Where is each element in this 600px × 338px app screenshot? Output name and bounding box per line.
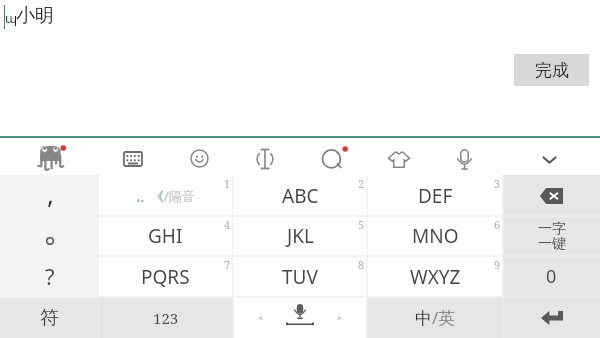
staticText: 完成 xyxy=(535,60,569,81)
button[interactable]: Question mark key xyxy=(0,256,98,297)
staticText: ABC xyxy=(282,183,319,209)
button[interactable]: Numbers xyxy=(98,297,233,338)
button[interactable]: Keyboard layout xyxy=(107,138,159,175)
button[interactable]: Theme xyxy=(373,138,425,175)
staticText: , xyxy=(47,176,54,211)
button[interactable]: JKL key xyxy=(233,216,367,256)
staticText: 2 xyxy=(358,176,365,191)
button[interactable]: Backspace xyxy=(503,175,600,216)
staticText: JKL xyxy=(287,223,314,249)
button[interactable]: Hide keyboard xyxy=(523,138,575,175)
button[interactable]: 完成 xyxy=(514,54,589,86)
button[interactable]: GHI key xyxy=(98,216,233,256)
button[interactable]: Chinese English toggle xyxy=(367,297,503,338)
button[interactable]: PQRS key xyxy=(98,256,233,297)
button[interactable]: Sogou input xyxy=(24,138,76,175)
staticText: 4 xyxy=(224,217,231,232)
staticText: 6 xyxy=(494,217,501,232)
staticText: ? xyxy=(45,261,55,291)
button[interactable]: MNO key xyxy=(367,216,503,256)
staticText: WXYZ xyxy=(410,264,461,290)
button[interactable]: DEF key xyxy=(367,175,503,216)
button[interactable]: Space, voice input xyxy=(233,297,367,338)
button[interactable]: Emoji xyxy=(173,138,225,175)
staticText: ,。《/隔音 xyxy=(137,187,195,205)
staticText: 符 xyxy=(40,306,59,330)
button[interactable]: WXYZ key xyxy=(367,256,503,297)
button[interactable]: Voice input xyxy=(438,138,490,175)
staticText: MNO xyxy=(412,223,459,249)
staticText: 3 xyxy=(494,176,501,191)
staticText: 8 xyxy=(358,257,365,272)
button[interactable]: Punctuation key xyxy=(98,175,233,216)
staticText: TUV xyxy=(282,264,318,290)
staticText: 9 xyxy=(494,257,501,272)
staticText: DEF xyxy=(418,183,453,209)
button[interactable]: Zero key xyxy=(503,256,600,297)
staticText: GHI xyxy=(148,223,183,249)
staticText: 0 xyxy=(546,264,557,289)
button[interactable]: TUV key xyxy=(233,256,367,297)
button[interactable]: Search xyxy=(305,138,357,175)
staticText: 中/英 xyxy=(415,306,456,329)
button[interactable]: Enter xyxy=(503,297,600,338)
button[interactable]: ABC key xyxy=(233,175,367,216)
staticText: 123 xyxy=(153,308,179,328)
staticText: ɰ xyxy=(5,9,18,27)
staticText: PQRS xyxy=(141,264,190,290)
staticText: 5 xyxy=(358,217,365,232)
staticText: 小明 xyxy=(16,4,54,28)
button[interactable]: Edit cursor xyxy=(239,138,291,175)
button[interactable]: Comma key xyxy=(0,175,98,216)
staticText: 1 xyxy=(224,176,231,191)
button[interactable]: Symbols xyxy=(0,297,98,338)
staticText: 7 xyxy=(224,257,231,272)
staticText: 一字 一键 xyxy=(538,220,566,252)
button[interactable]: Period key xyxy=(0,216,98,256)
button[interactable]: One word one key xyxy=(503,216,600,256)
